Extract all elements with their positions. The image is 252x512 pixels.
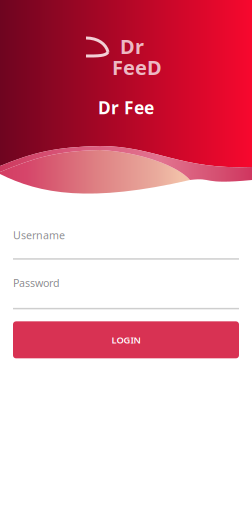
staticText: Password: [13, 276, 60, 290]
button[interactable]: LOGIN: [13, 321, 239, 358]
staticText: Dr Fee: [98, 96, 154, 119]
staticText: LOGIN: [111, 334, 140, 346]
staticText: Dr: [120, 33, 144, 60]
staticText: FeeD: [112, 54, 162, 81]
staticText: Username: [13, 228, 65, 242]
